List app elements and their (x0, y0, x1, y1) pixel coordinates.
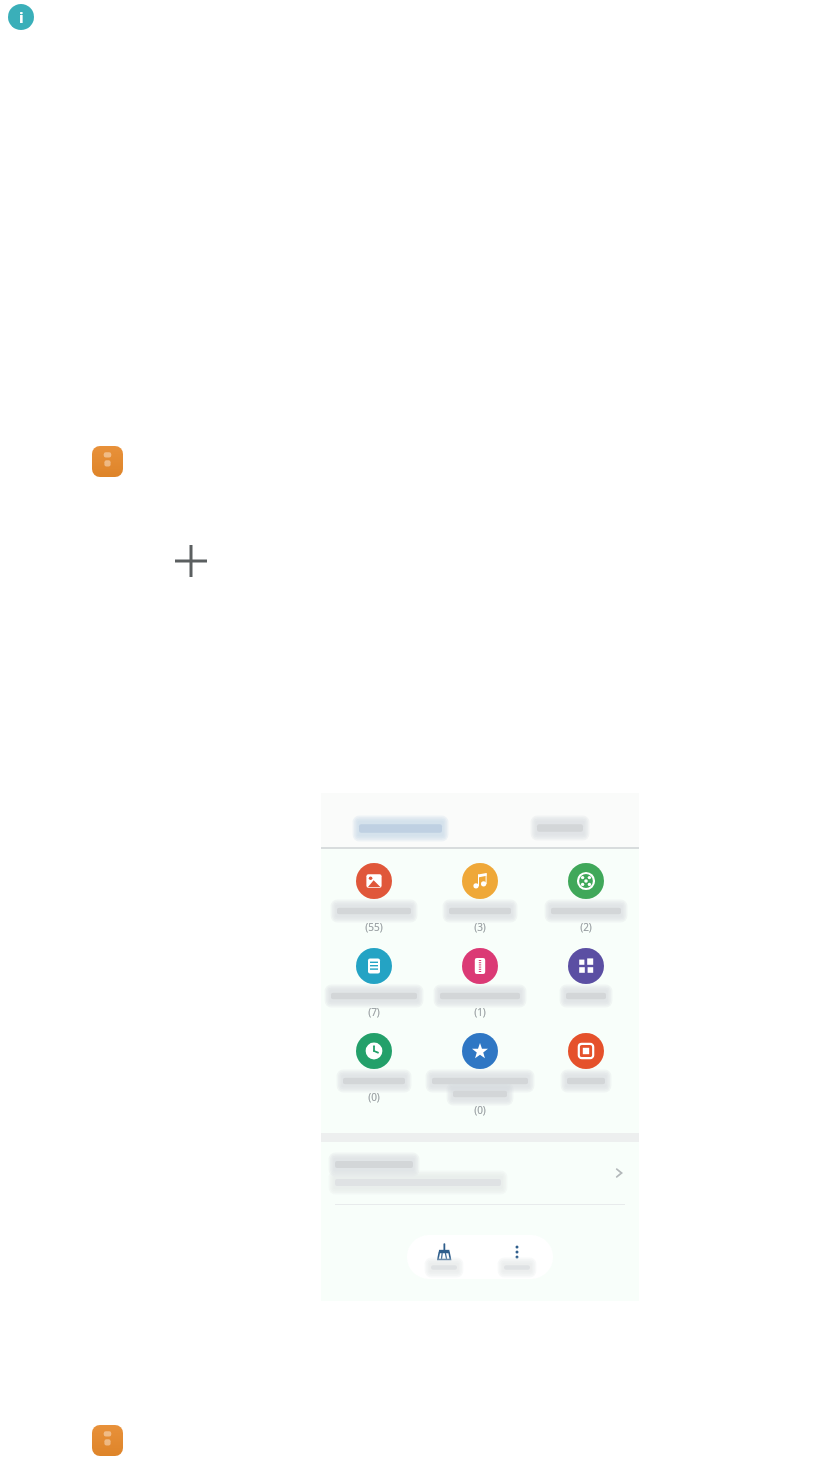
button[interactable]: MUSIC (427, 863, 533, 934)
staticText: (3) (474, 920, 486, 934)
button[interactable]: Information (8, 4, 34, 30)
staticText: (0) (474, 1103, 486, 1117)
button[interactable] (480, 809, 639, 847)
button[interactable]: Clean up (407, 1235, 480, 1279)
button[interactable]: APPS (533, 948, 639, 1017)
staticText: (2) (580, 920, 592, 934)
button[interactable]: My Files (92, 1425, 123, 1456)
staticText: (0) (368, 1090, 380, 1104)
button[interactable] (321, 809, 480, 847)
button[interactable]: Add (167, 537, 215, 585)
staticText: (55) (365, 920, 383, 934)
button[interactable]: DOC (321, 948, 427, 1019)
staticText: (7) (368, 1005, 380, 1019)
staticText: (1) (474, 1005, 486, 1019)
staticText: i (19, 7, 24, 27)
button[interactable]: CLOCK (321, 1033, 427, 1104)
button[interactable]: IMAGE (321, 863, 427, 934)
button[interactable] (321, 1142, 639, 1204)
button[interactable]: VIDEO (533, 863, 639, 934)
button[interactable]: ARCHIVE (533, 1033, 639, 1102)
button[interactable]: More (480, 1235, 553, 1279)
button[interactable]: My Files (92, 446, 123, 477)
button[interactable]: ZIP (427, 948, 533, 1019)
button[interactable]: STAR (427, 1033, 533, 1117)
